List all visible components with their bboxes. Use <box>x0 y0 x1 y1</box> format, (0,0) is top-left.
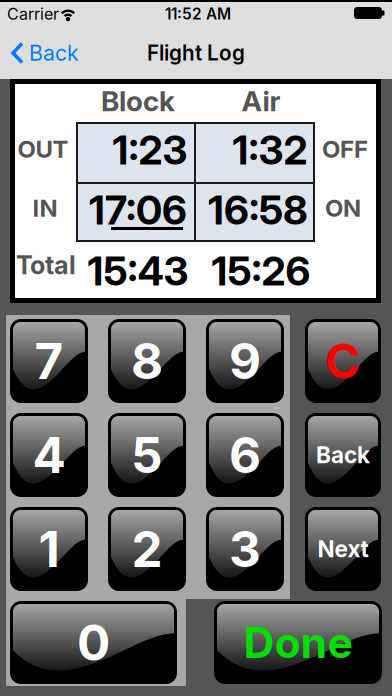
staticText: Air <box>241 84 280 118</box>
staticText: C <box>325 332 361 390</box>
staticText: 15:26 <box>211 247 310 295</box>
staticText: 0 <box>77 613 110 672</box>
staticText: 4 <box>32 425 65 485</box>
button[interactable]: 3 <box>206 507 284 591</box>
staticText: 11:52 AM <box>165 5 231 23</box>
staticText: 1:23 <box>112 126 187 174</box>
button[interactable]: 5 <box>108 413 186 497</box>
staticText: Block <box>101 84 175 118</box>
staticText: OFF <box>322 134 368 163</box>
staticText: 2 <box>131 519 162 579</box>
staticText: Next <box>317 535 368 563</box>
button[interactable]: 7 <box>10 319 88 403</box>
staticText: 5 <box>131 425 163 485</box>
staticText: 7 <box>34 331 63 391</box>
staticText: IN <box>32 193 57 222</box>
button[interactable]: Done <box>214 601 382 684</box>
staticText: Back <box>29 40 79 66</box>
button[interactable]: Back <box>10 33 92 73</box>
button[interactable]: 0 <box>10 601 177 684</box>
staticText: Flight Log <box>147 40 245 65</box>
button[interactable]: 9 <box>206 319 284 403</box>
staticText: Back <box>316 441 370 469</box>
button[interactable]: 2 <box>108 507 186 591</box>
button[interactable]: C <box>305 319 381 403</box>
button[interactable]: 1 <box>10 507 88 591</box>
button[interactable]: 4 <box>10 413 88 497</box>
staticText: 8 <box>131 331 163 391</box>
staticText: 1 <box>38 519 59 579</box>
staticText: 3 <box>229 519 261 579</box>
staticText: Carrier <box>7 4 59 24</box>
button[interactable]: Next <box>305 507 381 591</box>
staticText: 6 <box>229 425 261 485</box>
staticText: 1:32 <box>232 126 307 174</box>
staticText: OUT <box>17 134 68 163</box>
staticText: 16:58 <box>208 186 308 234</box>
staticText: 15:43 <box>87 247 188 295</box>
staticText: 9 <box>229 331 261 391</box>
staticText: Done <box>243 617 352 668</box>
button[interactable]: Back <box>305 413 381 497</box>
staticText: 17:06 <box>89 186 187 234</box>
staticText: ON <box>325 193 361 222</box>
button[interactable]: 8 <box>108 319 186 403</box>
staticText: Total <box>16 250 76 280</box>
button[interactable]: 6 <box>206 413 284 497</box>
